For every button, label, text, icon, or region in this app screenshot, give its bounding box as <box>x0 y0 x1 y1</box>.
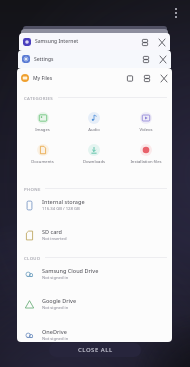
button[interactable]: Internal storage <box>17 194 172 216</box>
staticText: CLOUD <box>24 255 41 261</box>
button[interactable]: SD card <box>17 224 172 246</box>
button[interactable]: Samsung Internet <box>19 33 170 50</box>
staticText: My Files <box>33 75 121 82</box>
button[interactable]: Split screen view <box>137 51 154 67</box>
button[interactable]: Audio <box>68 112 120 133</box>
staticText: Audio <box>88 127 100 133</box>
staticText: Videos <box>139 127 153 133</box>
staticText: Not inserted <box>42 236 67 242</box>
staticText: Not signed in <box>42 305 69 311</box>
staticText: Not signed in <box>42 336 69 342</box>
staticText: CATEGORIES <box>24 95 54 101</box>
button[interactable]: Google Drive <box>17 293 172 315</box>
button[interactable]: Videos <box>120 112 172 133</box>
staticText: Internal storage <box>42 198 85 205</box>
button[interactable]: Downloads <box>68 144 120 165</box>
staticText: Google Drive <box>42 297 77 304</box>
button[interactable]: Close <box>153 34 170 50</box>
button[interactable]: Close <box>155 70 172 86</box>
button[interactable]: OneDrive <box>17 324 172 342</box>
button[interactable]: Settings <box>18 50 171 68</box>
staticText: Not signed in <box>42 275 69 281</box>
staticText: Settings <box>34 56 137 63</box>
staticText: CLOSE ALL <box>78 346 113 354</box>
button[interactable]: Close <box>154 51 171 67</box>
button[interactable]: Samsung Cloud Drive <box>17 263 172 285</box>
button[interactable]: CLOSE ALL <box>49 343 141 357</box>
button[interactable]: Documents <box>17 144 68 165</box>
button[interactable]: Installation files <box>120 144 172 165</box>
button[interactable]: More options <box>172 6 180 20</box>
staticText: Samsung Cloud Drive <box>42 267 99 274</box>
staticText: 116.34 GB / 128 GB <box>42 206 80 212</box>
staticText: Documents <box>31 159 54 165</box>
staticText: PHONE <box>24 186 41 192</box>
button[interactable]: Pop-up view <box>121 70 138 86</box>
button[interactable]: Images <box>17 112 68 133</box>
staticText: SD card <box>42 228 62 235</box>
staticText: Images <box>35 127 50 133</box>
staticText: Downloads <box>83 159 105 165</box>
button[interactable]: Split screen view <box>138 70 155 86</box>
staticText: Samsung Internet <box>35 38 136 45</box>
button[interactable]: Split screen view <box>136 34 153 50</box>
staticText: OneDrive <box>42 328 67 335</box>
staticText: Installation files <box>130 159 162 165</box>
